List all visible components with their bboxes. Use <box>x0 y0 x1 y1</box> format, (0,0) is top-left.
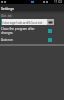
staticText: Autorun <box>1 38 46 42</box>
button[interactable]: /storage/sdcard0/out.txt <box>1 19 47 25</box>
staticText: /storage/sdcard0/out.txt <box>2 20 43 25</box>
button[interactable]: Close the program after changes <box>0 26 64 35</box>
button[interactable]: Browse <box>47 19 54 25</box>
staticText: Close the program after changes <box>1 27 46 35</box>
button[interactable]: Autorun <box>0 37 64 42</box>
staticText: Out .txt <box>1 14 12 18</box>
staticText: 11:03 <box>54 0 63 4</box>
staticText: Settings <box>1 6 14 11</box>
